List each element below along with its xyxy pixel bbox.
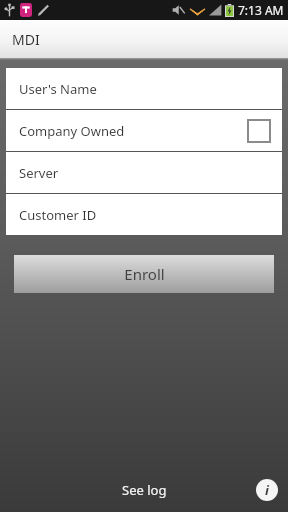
staticText: Server (19, 164, 59, 182)
staticText: Company Owned (19, 122, 248, 140)
button[interactable]: Company Owned (6, 110, 282, 151)
staticText: Customer ID (19, 206, 97, 224)
staticText: Enroll (124, 264, 165, 284)
button[interactable]: User's Name (6, 68, 282, 109)
staticText: MDI (12, 30, 40, 49)
button[interactable]: Enroll (14, 255, 274, 293)
button[interactable]: See log (122, 481, 167, 499)
staticText: 7:13 AM (238, 2, 284, 18)
button[interactable]: Customer ID (6, 194, 282, 235)
staticText: i (265, 481, 269, 499)
button[interactable]: Server (6, 152, 282, 193)
staticText: User's Name (19, 80, 97, 98)
button[interactable]: Info (256, 479, 278, 501)
